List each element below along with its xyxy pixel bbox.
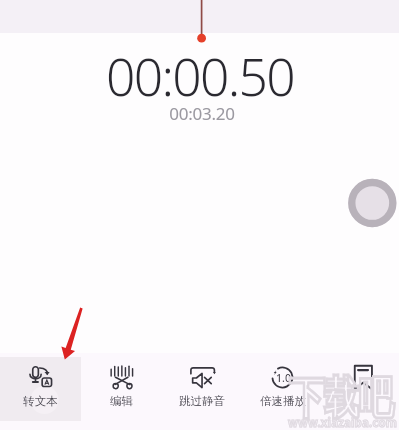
button[interactable]: Skip silence: [161, 353, 242, 430]
staticText: 倍速播放: [260, 394, 306, 408]
button[interactable]: Bookmark: [322, 353, 399, 430]
staticText: 1.0: [276, 371, 291, 385]
button[interactable]: Playback speed: [242, 353, 323, 430]
staticText: 下载吧: [289, 371, 393, 426]
staticText: 00:03.20: [169, 102, 235, 125]
staticText: 00:00.50: [106, 41, 294, 111]
staticText: www.xiazaiba.com: [288, 414, 397, 430]
button[interactable]: Convert to text: [0, 353, 81, 430]
button[interactable]: Edit: [81, 353, 162, 430]
staticText: 编辑: [110, 394, 133, 408]
staticText: 转文本: [23, 394, 58, 408]
staticText: 跳过静音: [179, 394, 225, 408]
